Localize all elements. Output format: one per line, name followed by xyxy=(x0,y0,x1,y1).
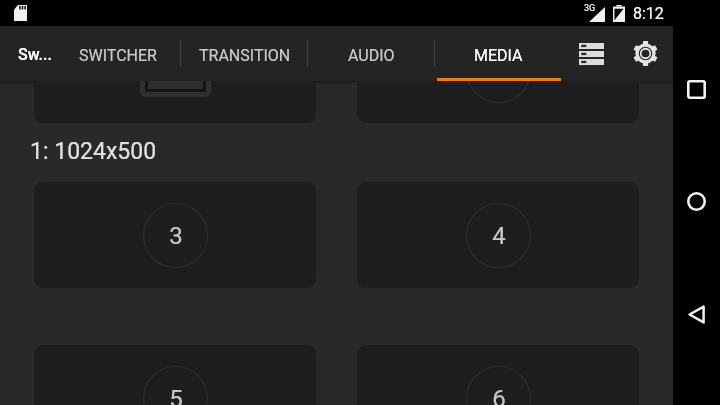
button[interactable]: 4 xyxy=(357,182,639,288)
button[interactable]: Recent apps xyxy=(673,66,720,113)
button[interactable]: 6 xyxy=(357,345,639,405)
button[interactable]: Storage xyxy=(569,26,613,81)
button[interactable]: 3 xyxy=(34,182,316,288)
staticText: 1: 1024x500 xyxy=(30,138,157,165)
button[interactable]: AUDIO xyxy=(308,26,435,81)
staticText: MEDIA xyxy=(474,46,523,65)
button[interactable] xyxy=(34,81,316,123)
button[interactable]: Sw... xyxy=(18,45,52,64)
staticText: 3 xyxy=(169,222,183,250)
button[interactable]: MEDIA xyxy=(435,26,562,81)
staticText: SWITCHER xyxy=(79,46,157,65)
staticText: 8:12 xyxy=(633,4,664,23)
staticText: 4 xyxy=(492,222,506,250)
staticText: AUDIO xyxy=(348,46,395,65)
staticText: Sw... xyxy=(18,45,52,64)
staticText: 6 xyxy=(492,385,506,405)
button[interactable]: Settings xyxy=(623,26,667,81)
staticText: 3G xyxy=(584,3,596,14)
button[interactable]: Home xyxy=(673,178,720,225)
button[interactable]: TRANSITION xyxy=(181,26,308,81)
staticText: 5 xyxy=(169,385,183,405)
button[interactable]: SWITCHER xyxy=(54,26,181,81)
staticText: TRANSITION xyxy=(199,46,291,65)
button[interactable]: 5 xyxy=(34,345,316,405)
button[interactable]: Back xyxy=(673,291,720,338)
